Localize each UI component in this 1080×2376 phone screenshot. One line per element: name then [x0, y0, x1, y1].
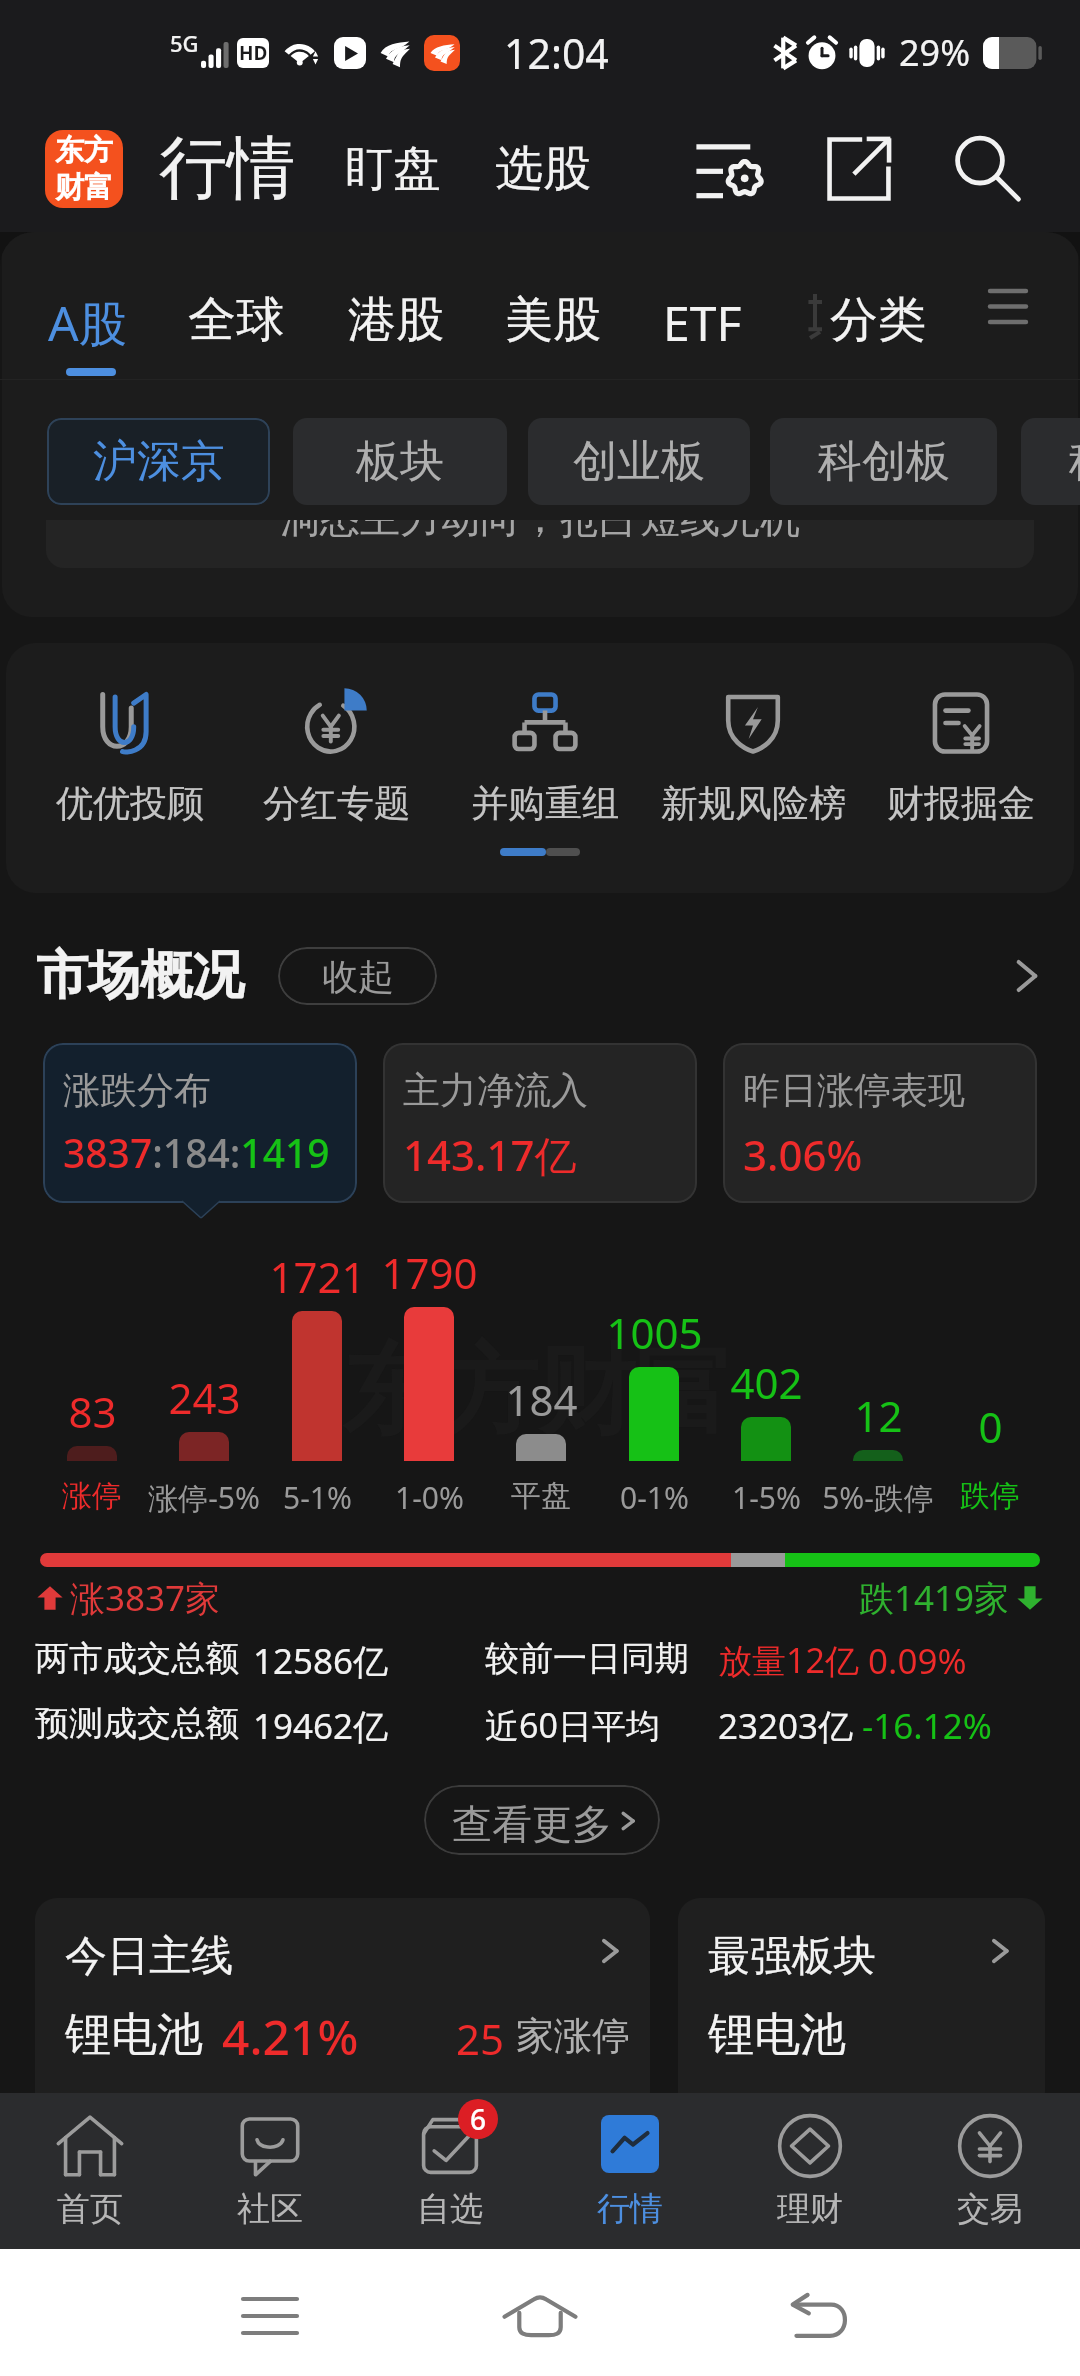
button[interactable]: 搜索 Search: [939, 121, 1035, 217]
staticText: 29%: [899, 28, 971, 77]
button[interactable]: 社区: [180, 2093, 360, 2249]
staticText: 优优投顾: [56, 780, 204, 827]
staticText: 交易: [957, 2188, 1023, 2230]
staticText: 涨停-5%: [148, 1477, 260, 1518]
button[interactable]: 市场概况: [0, 938, 1080, 1014]
staticText: 12: [854, 1387, 903, 1444]
staticText: 预测成交总额: [35, 1702, 239, 1745]
button[interactable]: 6: [360, 2093, 540, 2249]
staticText: 184: [505, 1371, 578, 1428]
button[interactable]: 昨日涨停表现: [723, 1043, 1037, 1203]
staticText: 涨跌分布: [63, 1067, 211, 1114]
staticText: -16.12%: [862, 1702, 992, 1750]
staticText: 科创板: [818, 434, 950, 489]
staticText: 板块: [356, 434, 444, 489]
button[interactable]: 涨跌分布: [43, 1043, 357, 1203]
staticText: 跌停: [960, 1477, 1020, 1515]
button[interactable]: 新规风险榜: [649, 692, 857, 827]
staticText: 盯盘: [345, 139, 441, 199]
staticText: 今日主线: [65, 1930, 233, 1983]
staticText: 自选: [417, 2188, 483, 2230]
staticText: 402: [730, 1354, 803, 1411]
staticText: 23203亿: [718, 1702, 854, 1750]
button[interactable]: 创业板: [528, 418, 750, 505]
button[interactable]: 优优投顾: [26, 692, 234, 827]
button[interactable]: 分红专题: [233, 692, 441, 827]
button[interactable]: 港股: [342, 284, 450, 356]
staticText: 近60日平均: [485, 1702, 660, 1748]
staticText: 首页: [57, 2188, 123, 2230]
button[interactable]: 财报掘金: [857, 692, 1065, 827]
staticText: 0.09%: [868, 1637, 967, 1685]
staticText: 理财: [777, 2188, 843, 2230]
staticText: 东方财富: [342, 1330, 734, 1453]
button[interactable]: 主页 Home: [485, 2261, 595, 2371]
staticText: 0: [978, 1398, 1003, 1455]
staticText: 市场概况: [36, 943, 244, 1009]
button[interactable]: 更多 More: [972, 270, 1044, 342]
staticText: 行情: [159, 126, 295, 212]
staticText: 跌1419家: [859, 1574, 1010, 1622]
button[interactable]: 分类: [824, 284, 932, 356]
staticText: 最强板块: [708, 1930, 876, 1983]
staticText: 分红专题: [263, 780, 411, 827]
staticText: 放量12亿: [718, 1637, 859, 1683]
button[interactable]: A股: [42, 284, 133, 362]
button[interactable]: 并购重组: [441, 692, 649, 827]
button[interactable]: 返回 Back: [765, 2261, 875, 2371]
button[interactable]: 最近任务 Recents: [215, 2261, 325, 2371]
staticText: 较前一日同期: [485, 1637, 689, 1680]
staticText: 0-1%: [620, 1477, 689, 1518]
staticText: 美股: [505, 290, 601, 350]
staticText: 4.21%: [222, 2004, 359, 2069]
staticText: 19462亿: [253, 1702, 389, 1750]
button[interactable]: 分享 Share: [811, 121, 907, 217]
button[interactable]: 全球: [182, 284, 290, 356]
staticText: 洞悉主力动向，抢占短线先机: [280, 520, 800, 541]
staticText: 科: [1069, 434, 1080, 489]
button[interactable]: 沪深京: [47, 418, 270, 505]
staticText: 243: [168, 1369, 241, 1426]
staticText: 创业板: [573, 434, 705, 489]
staticText: 1-5%: [732, 1477, 801, 1518]
staticText: 锂电池: [708, 2006, 846, 2064]
staticText: 3.06%: [743, 1126, 863, 1183]
button[interactable]: 科创板: [770, 418, 997, 505]
button[interactable]: 最强板块: [678, 1898, 1045, 2093]
staticText: 平盘: [511, 1477, 571, 1515]
button[interactable]: 板块: [293, 418, 507, 505]
button[interactable]: 美股: [499, 284, 607, 356]
staticText: 并购重组: [471, 780, 619, 827]
staticText: 143.17亿: [403, 1126, 577, 1183]
staticText: 东方: [55, 132, 113, 169]
staticText: 锂电池: [65, 2006, 203, 2064]
button[interactable]: 交易: [900, 2093, 1080, 2249]
button[interactable]: 今日主线: [35, 1898, 650, 2093]
staticText: A股: [48, 290, 127, 356]
button[interactable]: ETF: [657, 284, 748, 361]
button[interactable]: 查看更多: [424, 1785, 660, 1855]
button[interactable]: 设置 Settings: [682, 121, 778, 217]
staticText: 查看更多: [452, 1799, 612, 1849]
staticText: 港股: [348, 290, 444, 350]
staticText: 涨停: [62, 1477, 122, 1515]
staticText: 财富: [55, 169, 113, 206]
staticText: ETF: [663, 290, 742, 355]
staticText: 分类: [830, 290, 926, 350]
button[interactable]: 首页: [0, 2093, 180, 2249]
button[interactable]: 科: [1021, 418, 1080, 505]
staticText: HD: [239, 40, 268, 66]
staticText: 沪深京: [93, 434, 225, 489]
button[interactable]: 盯盘: [339, 115, 447, 223]
button[interactable]: 行情: [540, 2093, 720, 2249]
staticText: 1790: [381, 1244, 478, 1301]
button[interactable]: 选股: [489, 115, 597, 223]
staticText: 25: [456, 2010, 505, 2067]
staticText: 12:04: [504, 25, 609, 81]
staticText: 选股: [495, 139, 591, 199]
button[interactable]: 收起: [278, 947, 437, 1005]
button[interactable]: 理财: [720, 2093, 900, 2249]
staticText: 主力净流入: [403, 1067, 588, 1114]
button[interactable]: 主力净流入: [383, 1043, 697, 1203]
staticText: 昨日涨停表现: [743, 1067, 965, 1114]
